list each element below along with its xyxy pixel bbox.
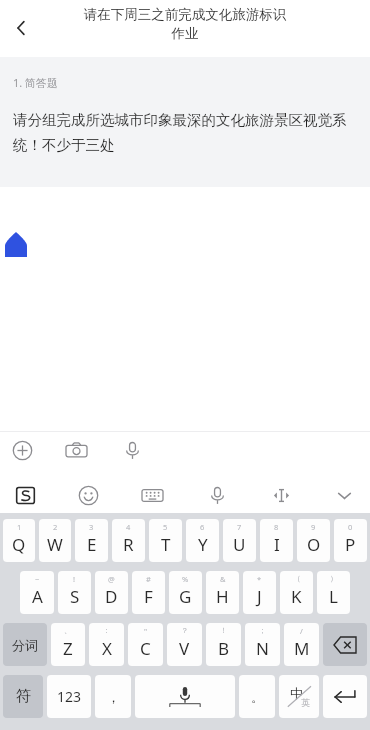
staticText: P: [345, 533, 356, 556]
staticText: 4: [126, 522, 131, 532]
staticText: %: [182, 574, 189, 584]
button[interactable]: 123: [47, 675, 91, 718]
button[interactable]: Move cursor: [263, 477, 299, 513]
button[interactable]: 7: [223, 519, 256, 562]
staticText: 6: [200, 522, 205, 532]
button[interactable]: ）: [317, 571, 350, 614]
staticText: Q: [12, 533, 26, 556]
staticText: 9: [311, 522, 316, 532]
staticText: O: [307, 533, 321, 556]
staticText: 。: [251, 689, 264, 705]
button[interactable]: &: [206, 571, 239, 614]
staticText: E: [87, 533, 97, 556]
staticText: 符: [16, 687, 31, 706]
button[interactable]: 9: [297, 519, 330, 562]
button[interactable]: Back: [2, 8, 42, 48]
staticText: &: [220, 574, 226, 584]
staticText: K: [291, 585, 302, 608]
staticText: 3: [89, 522, 94, 532]
button[interactable]: Input method: [7, 477, 43, 513]
button[interactable]: *: [243, 571, 276, 614]
staticText: B: [218, 637, 230, 660]
staticText: *: [257, 574, 262, 584]
staticText: 7: [237, 522, 242, 532]
button[interactable]: ！: [206, 623, 241, 666]
staticText: !: [73, 574, 76, 584]
button[interactable]: ；: [245, 623, 280, 666]
button[interactable]: Voice input: [199, 477, 235, 513]
button[interactable]: !: [58, 571, 91, 614]
staticText: Z: [63, 637, 73, 660]
staticText: 1. 简答题: [13, 75, 59, 90]
button[interactable]: @: [95, 571, 128, 614]
staticText: 分词: [12, 637, 38, 653]
staticText: L: [329, 585, 338, 608]
button[interactable]: 2: [39, 519, 71, 562]
button[interactable]: ~: [20, 571, 54, 614]
button[interactable]: Enter: [323, 675, 367, 718]
staticText: 请分组完成所选城市印象最深的文化旅游景区视觉系统！不少于三处: [13, 111, 357, 154]
staticText: I: [274, 533, 280, 556]
button[interactable]: ": [128, 623, 163, 666]
button[interactable]: 0: [334, 519, 367, 562]
staticText: N: [256, 637, 269, 660]
staticText: 请在下周三之前完成文化旅游标识 作业: [50, 6, 320, 42]
button[interactable]: ？: [167, 623, 202, 666]
button[interactable]: 1: [3, 519, 35, 562]
button[interactable]: 、: [51, 623, 85, 666]
staticText: J: [257, 585, 262, 608]
button[interactable]: Keyboard layout: [134, 477, 170, 513]
staticText: 5: [163, 522, 168, 532]
staticText: 8: [274, 522, 279, 532]
staticText: ~: [35, 574, 40, 584]
staticText: 英: [301, 697, 310, 708]
button[interactable]: Camera: [58, 432, 94, 468]
staticText: ！: [220, 626, 228, 635]
button[interactable]: Emoji: [70, 477, 106, 513]
button[interactable]: %: [169, 571, 202, 614]
staticText: #: [146, 574, 151, 584]
staticText: （: [293, 574, 301, 583]
staticText: U: [233, 533, 246, 556]
button[interactable]: Voice record: [114, 432, 150, 468]
staticText: 、: [64, 626, 72, 635]
staticText: Y: [198, 533, 208, 556]
button[interactable]: Backspace: [323, 623, 367, 666]
staticText: ": [144, 626, 148, 636]
staticText: 2: [53, 522, 58, 532]
staticText: ）: [330, 574, 338, 583]
staticText: G: [179, 585, 192, 608]
button[interactable]: #: [132, 571, 165, 614]
staticText: C: [140, 637, 151, 660]
staticText: W: [47, 533, 63, 556]
staticText: 1: [17, 522, 22, 532]
button[interactable]: （: [280, 571, 313, 614]
button[interactable]: ：: [89, 623, 124, 666]
staticText: ？: [181, 626, 189, 635]
button[interactable]: /: [284, 623, 319, 666]
button[interactable]: 符: [3, 675, 43, 718]
button[interactable]: 4: [112, 519, 145, 562]
staticText: ，: [107, 689, 120, 705]
button[interactable]: Space: [135, 675, 235, 718]
button[interactable]: 5: [149, 519, 182, 562]
staticText: F: [144, 585, 153, 608]
staticText: A: [32, 585, 43, 608]
button[interactable]: 6: [186, 519, 219, 562]
button[interactable]: 分词: [3, 623, 47, 666]
staticText: 中: [290, 685, 303, 701]
staticText: 0: [348, 522, 353, 532]
staticText: H: [216, 585, 229, 608]
button[interactable]: Add: [4, 432, 40, 468]
button[interactable]: 3: [75, 519, 108, 562]
button[interactable]: 。: [239, 675, 275, 718]
button[interactable]: 8: [260, 519, 293, 562]
staticText: D: [105, 585, 118, 608]
button[interactable]: Switch Chinese English: [279, 675, 319, 718]
staticText: /: [300, 626, 303, 636]
staticText: M: [294, 637, 310, 660]
button[interactable]: Hide keyboard: [326, 477, 362, 513]
staticText: ：: [103, 626, 111, 635]
staticText: S: [70, 585, 80, 608]
button[interactable]: ，: [95, 675, 131, 718]
